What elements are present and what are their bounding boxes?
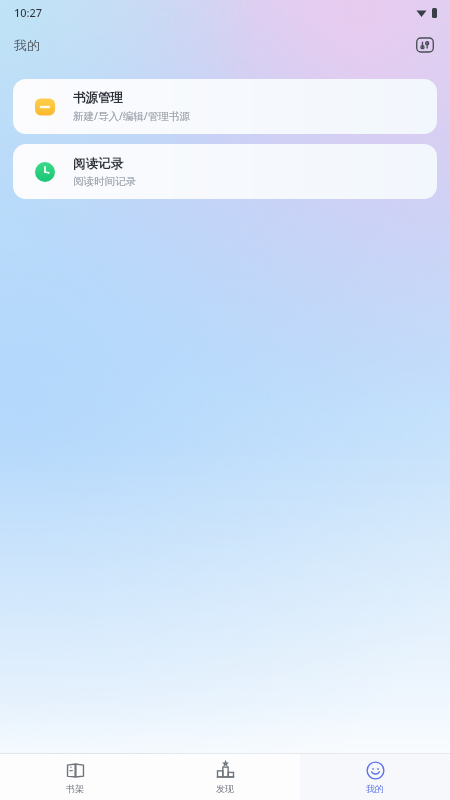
staticText: 书源管理 (73, 90, 123, 106)
staticText: 10:27 (14, 5, 43, 20)
staticText: 书架 (66, 783, 84, 794)
staticText: 发现 (216, 783, 234, 794)
staticText: 阅读时间记录 (73, 175, 136, 188)
button[interactable]: 我的 (300, 754, 450, 800)
button[interactable]: 设置 (410, 30, 440, 60)
button[interactable]: 阅读记录 (13, 144, 437, 199)
staticText: 阅读记录 (73, 156, 123, 172)
staticText: 我的 (366, 783, 384, 794)
button[interactable]: 书源管理 (13, 79, 437, 134)
button[interactable]: 书架 (0, 754, 150, 800)
staticText: 我的 (14, 37, 40, 53)
button[interactable]: 发现 (150, 754, 300, 800)
staticText: 新建/导入/编辑/管理书源 (73, 109, 190, 123)
